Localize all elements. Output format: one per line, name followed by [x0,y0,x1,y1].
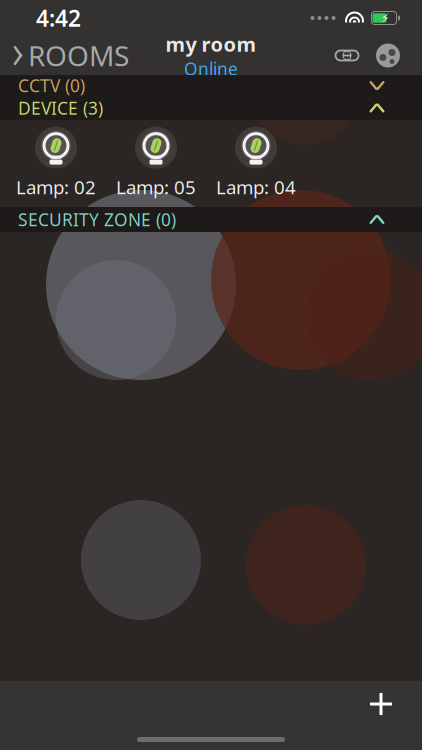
button[interactable]: Add device [358,681,404,727]
button[interactable]: ROOMS [0,31,129,80]
staticText: ⚡︎ [381,11,389,25]
staticText: CCTV (0) [18,74,85,97]
button[interactable]: SECURITY ZONE (0) [0,207,422,232]
staticText: SECURITY ZONE (0) [18,208,176,231]
staticText: 4:42 [36,3,81,33]
staticText: my room [165,31,256,57]
button[interactable]: CCTV (0) [0,75,422,96]
button[interactable]: Lamp: 02 [6,122,106,205]
staticText: ROOMS [28,37,129,74]
staticText: Lamp: 05 [116,175,196,199]
button[interactable]: Cloud connection [368,35,408,75]
staticText: Lamp: 04 [216,175,296,199]
button[interactable]: Share link [326,38,368,72]
staticText: Lamp: 02 [16,175,96,199]
staticText: Online [184,57,238,80]
staticText: DEVICE (3) [18,96,103,119]
button[interactable]: Lamp: 04 [206,122,306,205]
button[interactable]: Lamp: 05 [106,122,206,205]
button[interactable]: DEVICE (3) [0,96,422,120]
